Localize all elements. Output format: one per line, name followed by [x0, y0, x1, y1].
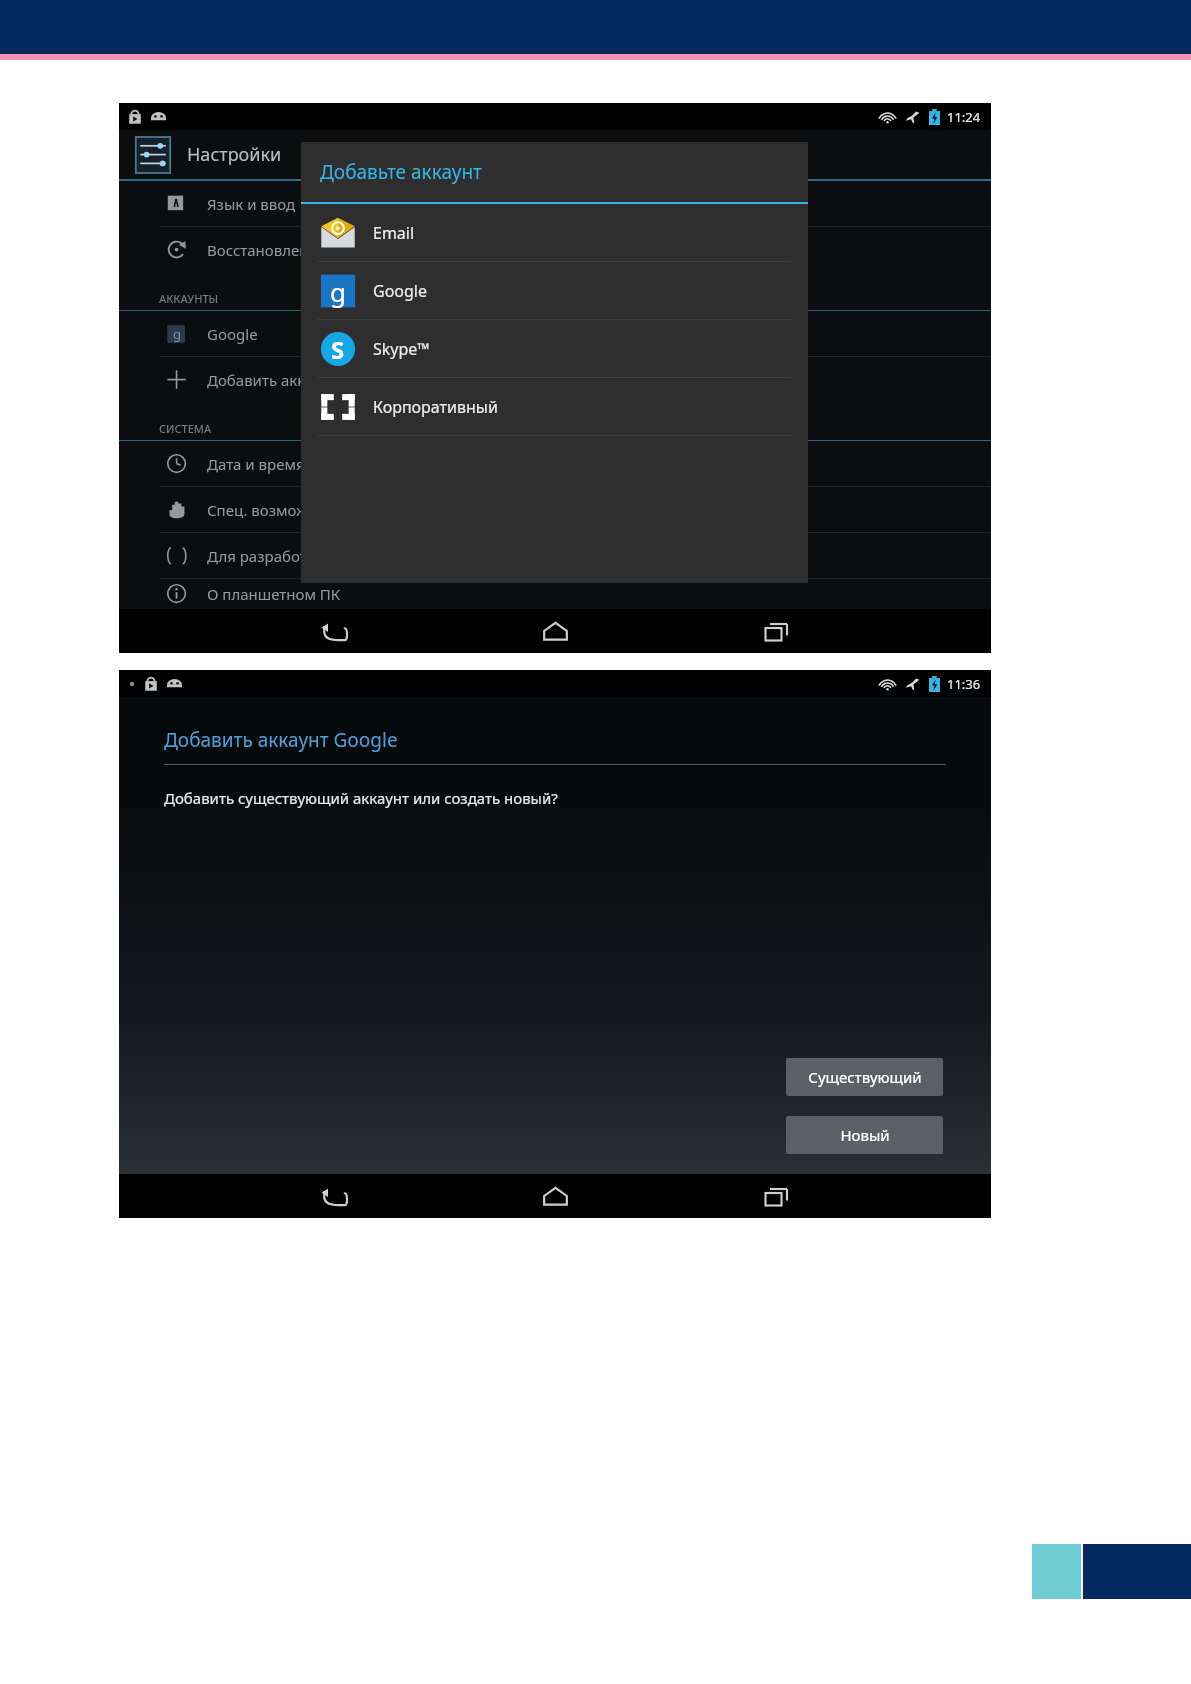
staticText: Google [207, 324, 258, 344]
button[interactable]: О планшетном ПК [119, 579, 991, 609]
button[interactable]: Дата и время [119, 441, 991, 486]
staticText: S [331, 333, 345, 366]
staticText: АККАУНТЫ [159, 291, 219, 306]
staticText: Новый [840, 1125, 890, 1145]
button[interactable]: Recent apps [746, 609, 806, 653]
button[interactable]: g [119, 311, 991, 356]
button[interactable]: Back [304, 1174, 364, 1218]
staticText: Email [373, 222, 415, 244]
staticText: Корпоративный [373, 396, 498, 418]
staticText: Добавить существующий аккаунт или создат… [164, 788, 558, 808]
button[interactable]: Восстановление и сброс [119, 227, 991, 272]
button[interactable]: Home [525, 609, 585, 653]
staticText: СИСТЕМА [159, 421, 212, 436]
button[interactable]: Back [304, 609, 364, 653]
staticText: Google [373, 280, 428, 302]
staticText: Дата и время [207, 454, 305, 474]
button[interactable]: g [301, 262, 808, 319]
staticText: Спец. возможности [207, 500, 350, 520]
staticText: g [330, 274, 346, 309]
button[interactable]: Корпоративный [301, 378, 808, 435]
staticText: Добавить аккаунт Google [164, 727, 398, 753]
staticText: Язык и ввод [207, 194, 296, 214]
button[interactable]: Home [525, 1174, 585, 1218]
staticText: g [173, 325, 181, 343]
staticText: О планшетном ПК [207, 584, 341, 604]
button[interactable]: Для разработчиков [119, 533, 991, 578]
staticText: Добавьте аккаунт [320, 159, 482, 185]
button[interactable]: S [301, 320, 808, 377]
button[interactable]: Новый [786, 1116, 943, 1154]
button[interactable]: Существующий [786, 1058, 943, 1096]
staticText: Настройки [187, 142, 282, 167]
staticText: Для разработчиков [207, 546, 350, 566]
staticText: Существующий [808, 1067, 922, 1087]
button[interactable]: Спец. возможности [119, 487, 991, 532]
staticText: Восстановление и сброс [207, 240, 385, 260]
staticText: Добавить аккаунт [207, 370, 337, 390]
staticText: 11:36 [947, 675, 981, 693]
button[interactable]: Язык и ввод [119, 181, 991, 226]
button[interactable]: Добавить аккаунт [119, 357, 991, 402]
button[interactable]: Recent apps [746, 1174, 806, 1218]
button[interactable]: Email [301, 204, 808, 261]
staticText: 11:24 [947, 108, 981, 126]
staticText: Skype™ [373, 338, 430, 360]
